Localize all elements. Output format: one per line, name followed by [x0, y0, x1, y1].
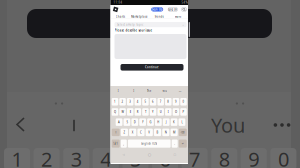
- staticText: ⇧: [115, 131, 117, 134]
- staticText: ↵: [182, 142, 184, 145]
- button[interactable]: 5: [142, 98, 149, 105]
- button[interactable]: Search: [110, 5, 116, 9]
- button[interactable]: K: [171, 118, 177, 126]
- staticText: 0: [182, 100, 184, 103]
- button[interactable]: Backspace: [179, 129, 187, 136]
- staticText: Y: [152, 110, 154, 114]
- button[interactable]: S: [124, 118, 130, 126]
- button[interactable]: 9: [173, 98, 179, 105]
- button[interactable]: 8: [165, 98, 171, 105]
- button[interactable]: W: [119, 108, 126, 116]
- staticText: F: [142, 120, 143, 124]
- staticText: D: [134, 120, 136, 124]
- button[interactable]: Marketplace: [130, 14, 149, 19]
- button[interactable]: Trends: [149, 14, 169, 19]
- staticText: 5: [144, 100, 146, 103]
- button[interactable]: 7: [157, 98, 164, 105]
- button[interactable]: 6: [150, 98, 156, 105]
- staticText: O: [175, 110, 177, 114]
- staticText: 0: [278, 146, 289, 168]
- button[interactable]: V: [146, 129, 153, 136]
- staticText: Charts: [116, 15, 125, 18]
- staticText: T: [145, 110, 146, 114]
- button[interactable]: A: [116, 118, 122, 126]
- button[interactable]: Select a Help Topic: [110, 19, 182, 24]
- button[interactable]: N: [162, 129, 169, 136]
- button[interactable]: H: [155, 118, 162, 126]
- button[interactable]: F: [139, 118, 146, 126]
- staticText: Log In: [168, 8, 177, 11]
- staticText: P: [182, 110, 184, 114]
- staticText: C: [140, 131, 142, 134]
- button[interactable]: B: [154, 129, 161, 136]
- button[interactable]: ,: [121, 139, 127, 148]
- staticText: I: [118, 89, 119, 93]
- button[interactable]: Sign Up: [110, 5, 122, 9]
- button[interactable]: Shift: [112, 129, 120, 136]
- staticText: S: [126, 120, 127, 124]
- staticText: 2: [41, 146, 52, 168]
- button[interactable]: More: [169, 14, 188, 19]
- button[interactable]: 4: [135, 98, 141, 105]
- button[interactable]: Back: [110, 150, 136, 158]
- staticText: G: [149, 120, 151, 124]
- staticText: You: [211, 112, 245, 138]
- staticText: X: [132, 131, 134, 134]
- button[interactable]: D: [131, 118, 138, 126]
- staticText: I: [133, 89, 134, 93]
- staticText: E: [130, 110, 131, 114]
- staticText: Sign Up: [152, 8, 163, 11]
- button[interactable]: J: [163, 118, 170, 126]
- staticText: ⌫: [181, 131, 185, 134]
- staticText: J: [166, 120, 167, 124]
- button[interactable]: 3: [127, 98, 133, 105]
- button[interactable]: Continue: [110, 19, 173, 26]
- staticText: M: [173, 131, 175, 134]
- button[interactable]: O: [173, 108, 179, 116]
- staticText: I: [168, 110, 169, 114]
- staticText: The: [147, 89, 152, 93]
- button[interactable]: R: [135, 108, 141, 116]
- staticText: Z: [123, 131, 125, 134]
- button[interactable]: Q: [112, 108, 118, 116]
- staticText: K: [173, 120, 175, 124]
- staticText: W: [122, 110, 124, 114]
- button[interactable]: T: [142, 108, 149, 116]
- button[interactable]: Return: [179, 139, 187, 148]
- button[interactable]: U: [157, 108, 164, 116]
- button[interactable]: 1: [112, 98, 118, 105]
- staticText: 8: [167, 100, 169, 103]
- button[interactable]: Log In: [110, 5, 120, 9]
- button[interactable]: M: [170, 129, 178, 136]
- staticText: Select a Help Topic: [117, 23, 143, 26]
- button[interactable]: E: [127, 108, 133, 116]
- button[interactable]: Charts: [110, 14, 130, 19]
- button[interactable]: Z: [121, 129, 128, 136]
- staticText: H: [157, 120, 159, 124]
- button[interactable]: Y: [150, 108, 156, 116]
- button[interactable]: L: [178, 118, 185, 126]
- staticText: N: [165, 131, 167, 134]
- button[interactable]: C: [137, 129, 145, 136]
- button[interactable]: Space: [128, 139, 171, 148]
- button[interactable]: .: [172, 139, 178, 148]
- button[interactable]: 2: [119, 98, 126, 105]
- button[interactable]: X: [129, 129, 136, 136]
- button[interactable]: G: [147, 118, 154, 126]
- button[interactable]: I: [165, 108, 171, 116]
- staticText: □: [174, 153, 177, 156]
- button[interactable]: 0: [180, 98, 187, 105]
- button[interactable]: !#1: [112, 139, 120, 148]
- staticText: 54%: [181, 1, 187, 4]
- button[interactable]: P: [180, 108, 187, 116]
- staticText: Please describe your issue: [114, 29, 152, 32]
- staticText: 3: [71, 146, 82, 168]
- staticText: ⌄: [182, 23, 184, 26]
- staticText: A: [118, 120, 120, 124]
- staticText: More: [175, 15, 182, 18]
- staticText: 7: [189, 146, 200, 168]
- staticText: 6: [159, 146, 170, 168]
- staticText: ○: [148, 152, 151, 157]
